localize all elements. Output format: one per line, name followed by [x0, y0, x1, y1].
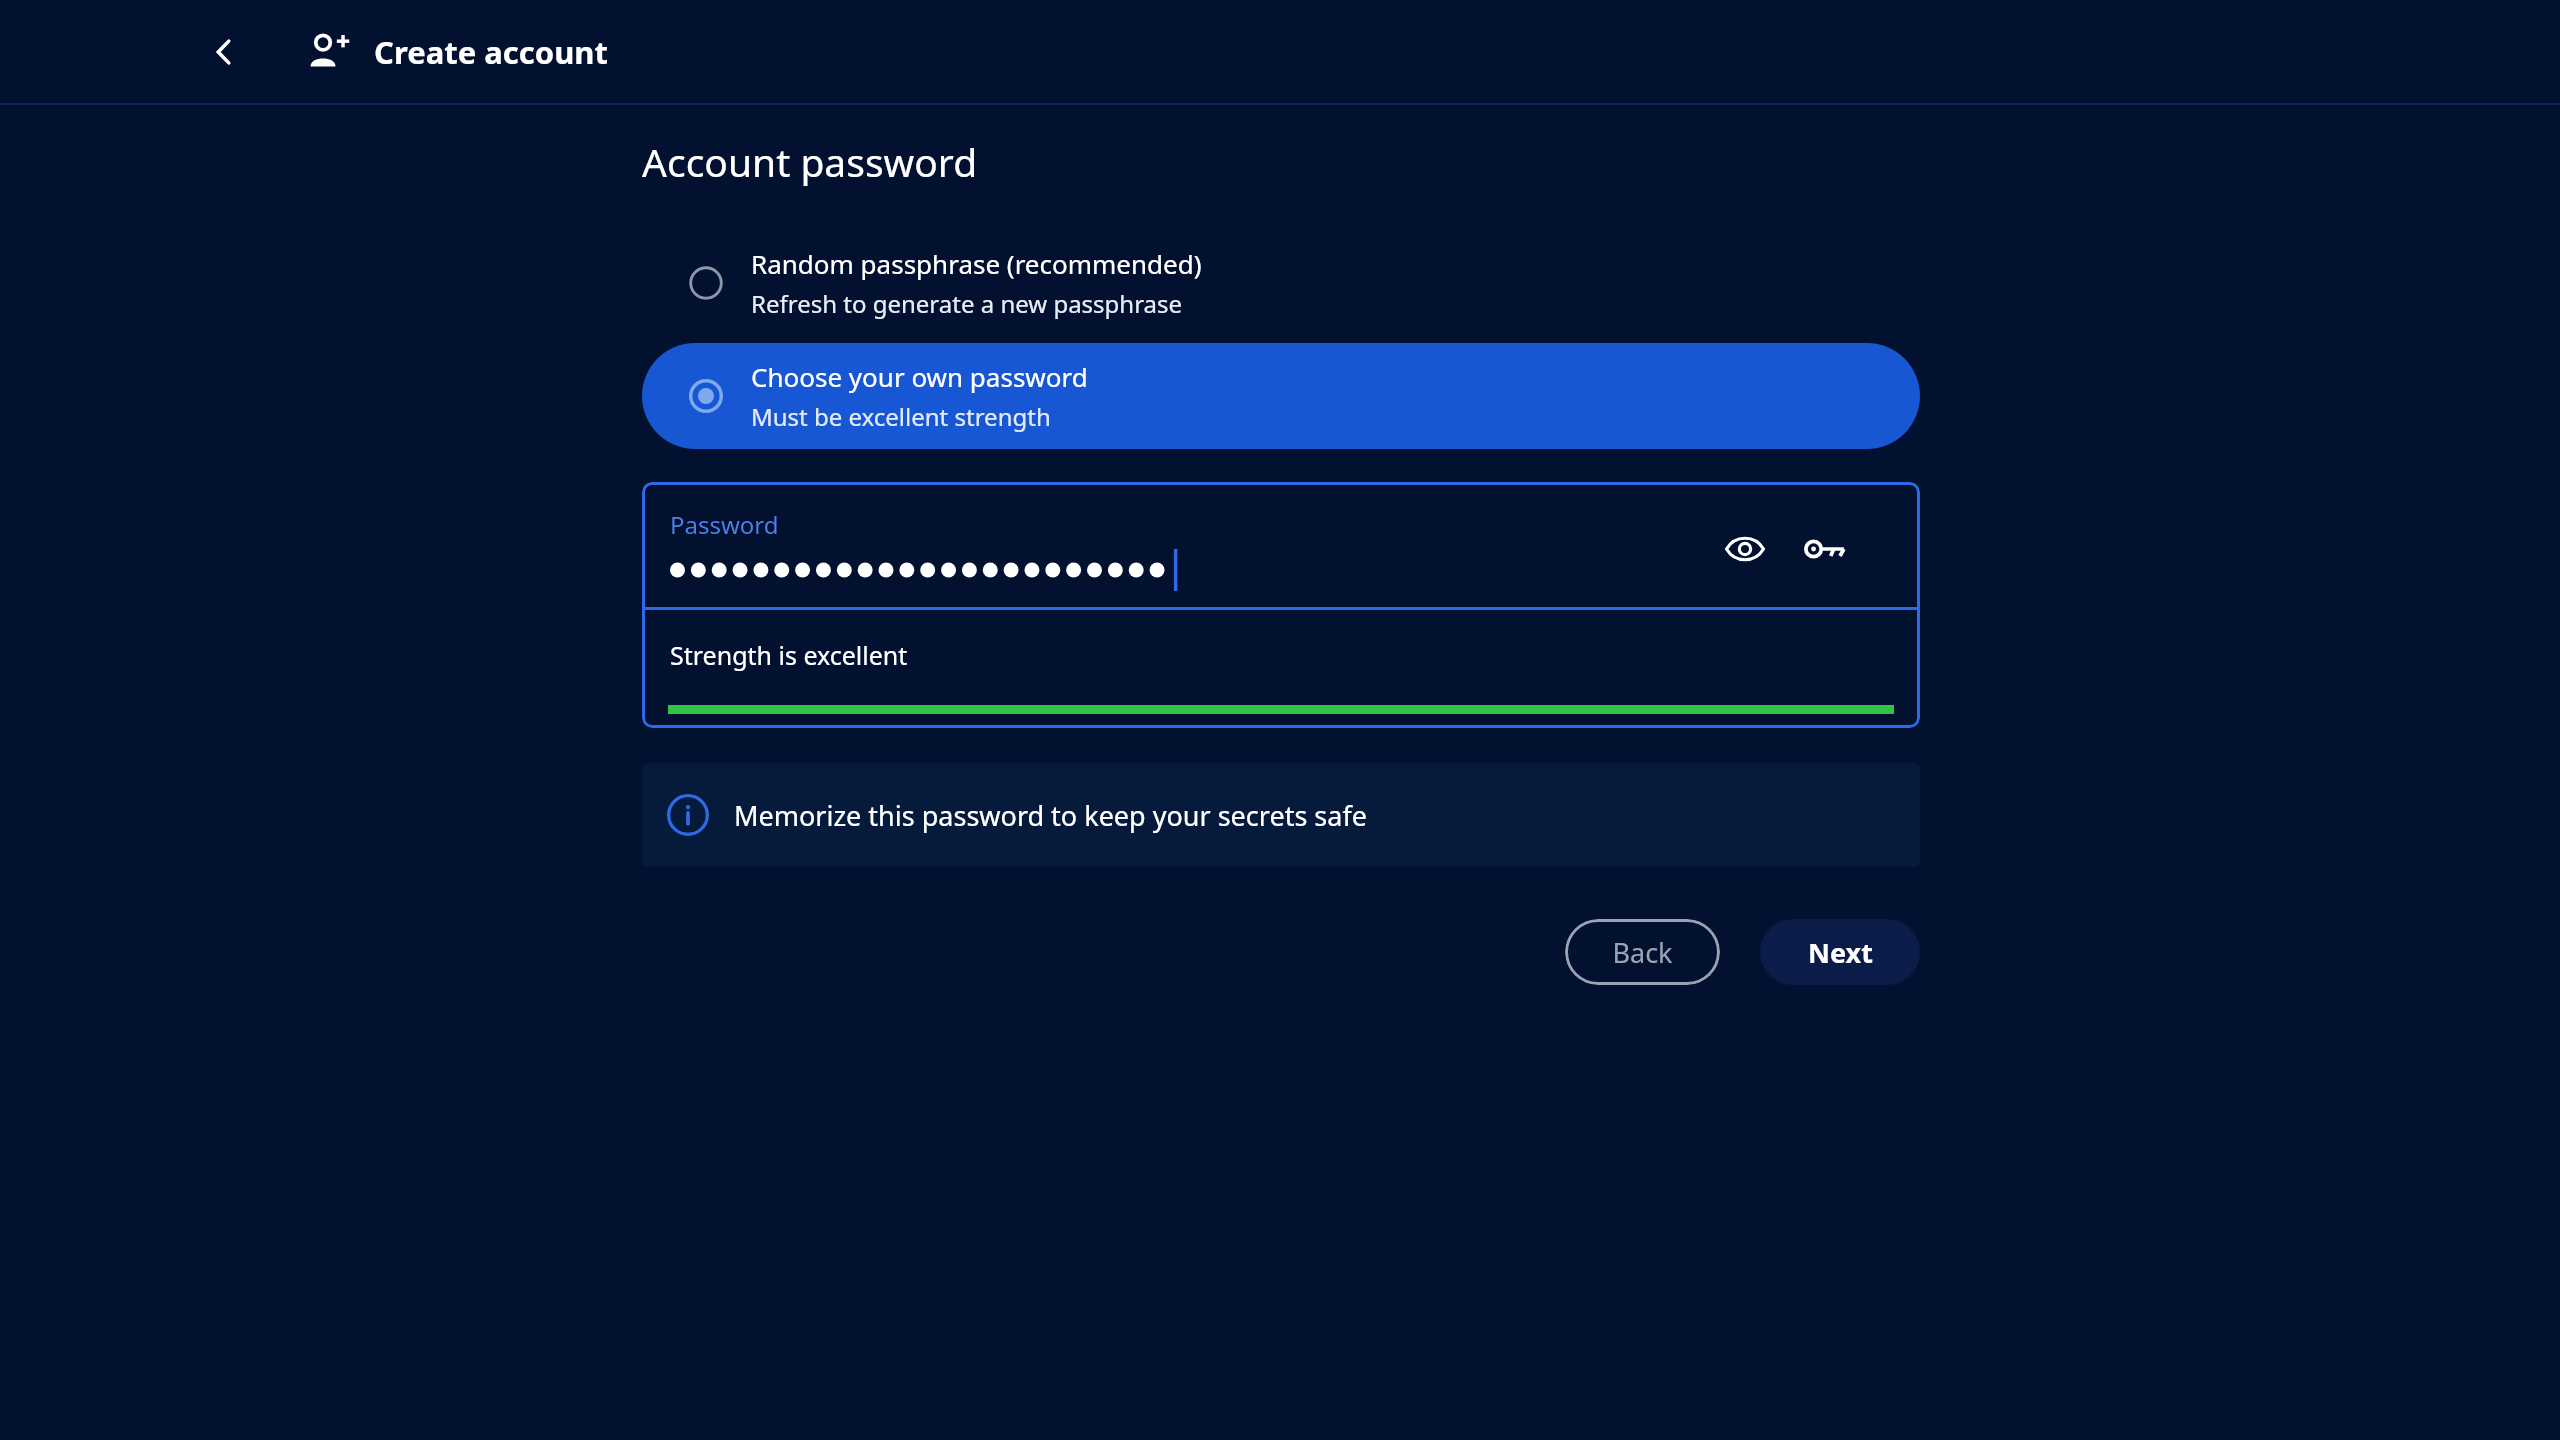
button[interactable]: Random passphrase (recommended)	[642, 233, 1920, 333]
staticText: Choose your own password	[751, 359, 1088, 394]
staticText: Create account	[374, 31, 608, 73]
button[interactable]: Next	[1760, 919, 1920, 985]
staticText: Next	[1808, 934, 1873, 971]
staticText: Memorize this password to keep your secr…	[734, 797, 1367, 834]
staticText: Back	[1612, 934, 1673, 971]
staticText: Refresh to generate a new passphrase	[751, 287, 1183, 320]
button[interactable]: Strength is excellent	[642, 610, 1920, 728]
staticText: Random passphrase (recommended)	[751, 246, 1202, 281]
staticText: Must be excellent strength	[751, 400, 1051, 433]
button[interactable]: Memorize this password to keep your secr…	[642, 763, 1920, 867]
staticText: Account password	[642, 135, 978, 188]
button[interactable]: Back	[1565, 919, 1720, 985]
button[interactable]: Choose your own password	[642, 343, 1920, 449]
staticText: Strength is excellent	[670, 638, 908, 672]
button[interactable]: Back	[196, 24, 252, 80]
button[interactable]: Show password	[1716, 520, 1774, 578]
staticText: Password	[670, 508, 779, 541]
button[interactable]: Generate password	[1796, 520, 1854, 578]
button[interactable]: Password	[642, 482, 1920, 607]
